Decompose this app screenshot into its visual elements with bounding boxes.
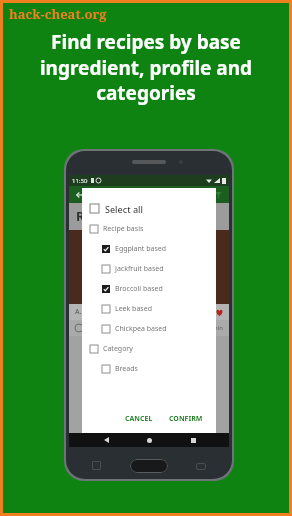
button[interactable]: Select all — [82, 198, 216, 219]
button[interactable]: Back — [99, 433, 113, 447]
button[interactable]: Recents — [186, 433, 200, 447]
staticText: hack-cheat.org — [9, 5, 107, 23]
staticText: Chickpea based — [115, 324, 167, 334]
staticText: Broccoli based — [115, 284, 163, 294]
button[interactable]: Recipe basis — [82, 219, 216, 239]
button[interactable]: CONFIRM — [164, 411, 208, 427]
staticText: Eggplant based — [115, 244, 167, 254]
button[interactable]: Category — [82, 339, 216, 359]
staticText: A... — [75, 307, 86, 317]
button[interactable]: Back — [73, 188, 87, 202]
button[interactable]: CANCEL — [120, 411, 158, 427]
staticText: Select all — [105, 203, 143, 215]
staticText: min — [212, 324, 223, 332]
staticText: 11:50 — [72, 177, 88, 185]
staticText: CANCEL — [125, 414, 153, 424]
staticText: Recipe basis — [103, 224, 144, 234]
staticText: Breads — [115, 364, 138, 374]
staticText: Leek based — [115, 304, 152, 314]
staticText: Jackfruit based — [115, 264, 164, 274]
button[interactable]: Breads — [82, 359, 216, 379]
button[interactable]: Eggplant based — [82, 239, 216, 259]
staticText: Category — [103, 344, 133, 354]
button[interactable]: Filter — [211, 188, 225, 202]
button[interactable]: Home — [142, 433, 156, 447]
staticText: CONFIRM — [169, 414, 203, 424]
staticText: Recipes — [76, 207, 126, 225]
button[interactable]: Leek based — [82, 299, 216, 319]
button[interactable]: Chickpea based — [82, 319, 216, 339]
button[interactable]: Broccoli based — [82, 279, 216, 299]
staticText: Find recipes by base ingredient, profile… — [17, 29, 275, 105]
button[interactable]: Jackfruit based — [82, 259, 216, 279]
